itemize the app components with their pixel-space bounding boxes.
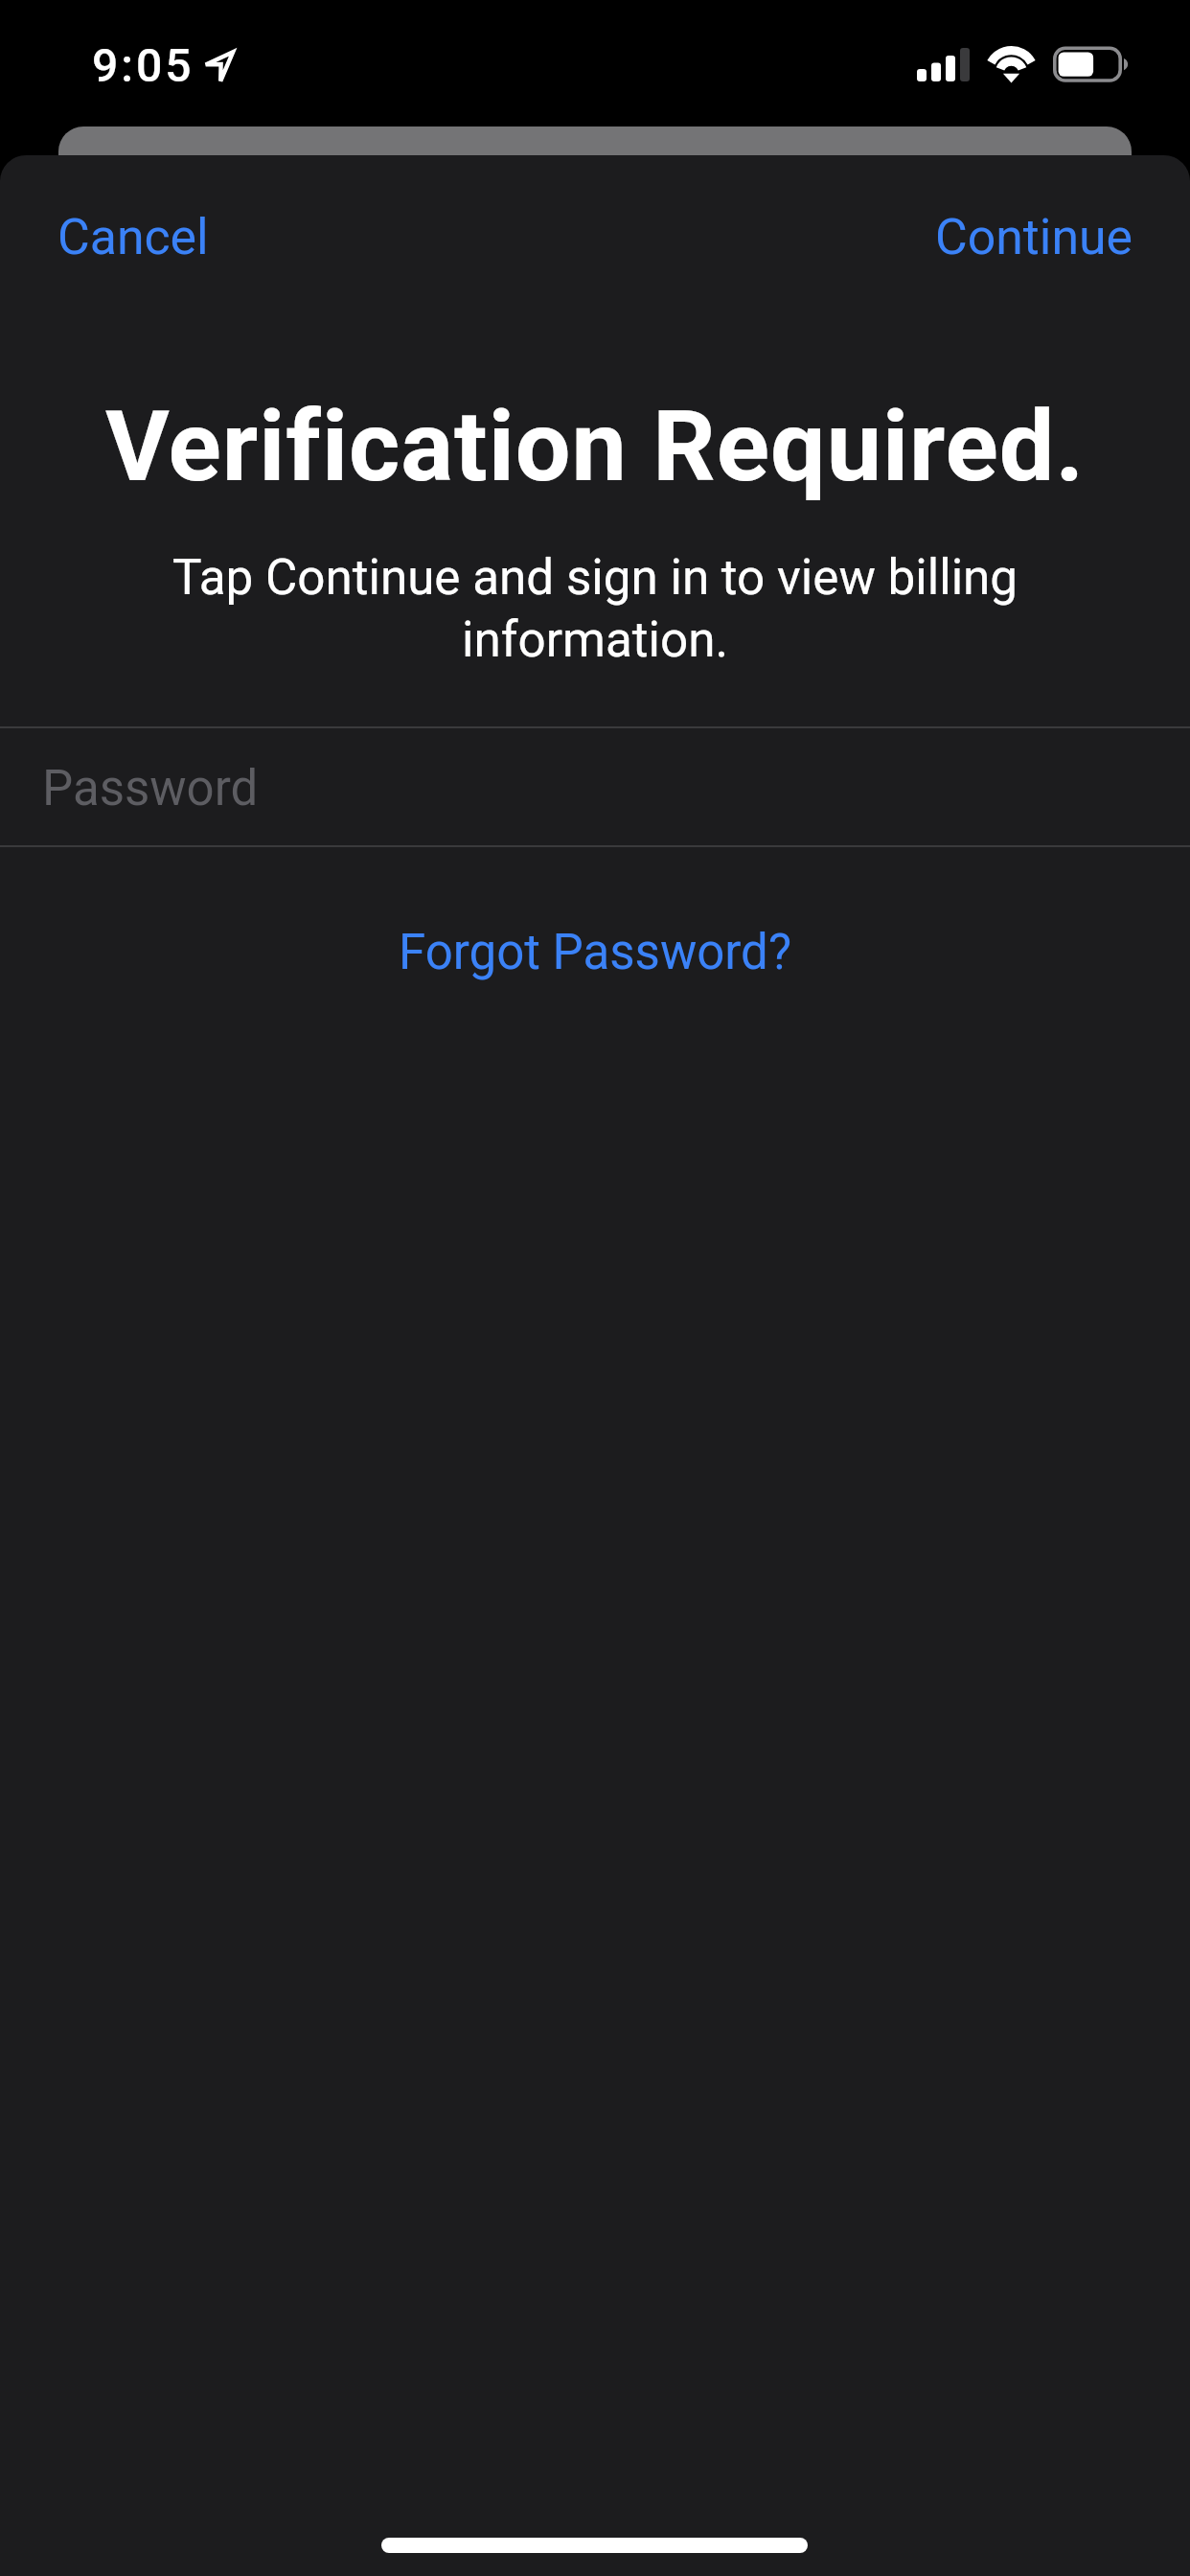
button[interactable]: Continue	[881, 172, 1190, 303]
other: Location services active	[201, 49, 238, 85]
staticText: Verification Required.	[38, 389, 1152, 504]
staticText: Continue	[935, 208, 1133, 266]
other: Cellular signal, Wi-Fi and battery statu…	[910, 42, 1140, 86]
staticText: Forgot Password?	[399, 924, 791, 981]
staticText: 9:05	[92, 38, 195, 92]
button[interactable]: Forgot Password?	[360, 887, 830, 1018]
staticText: Tap Continue and sign in to view billing…	[144, 548, 1046, 669]
staticText: Password	[42, 760, 259, 817]
staticText: Cancel	[57, 208, 209, 266]
button[interactable]: Password	[0, 726, 1190, 847]
button[interactable]: Cancel	[0, 172, 263, 303]
